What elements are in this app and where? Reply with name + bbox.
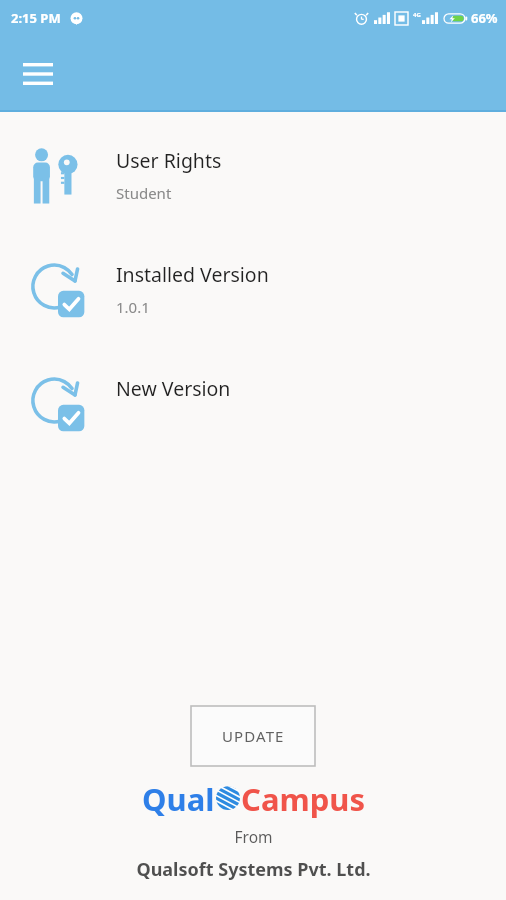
staticText: Qual: [142, 778, 215, 820]
staticText: 1.0.1: [116, 297, 150, 317]
button[interactable]: Open navigation menu: [14, 50, 62, 98]
staticText: Installed Version: [116, 261, 269, 288]
staticText: 2:15 PM: [11, 9, 61, 27]
staticText: 4G: [413, 11, 421, 19]
staticText: User Rights: [116, 147, 222, 174]
staticText: Student: [116, 183, 172, 203]
button[interactable]: UPDATE: [191, 706, 315, 766]
staticText: UPDATE: [222, 726, 285, 746]
staticText: Campus: [241, 778, 365, 820]
staticText: From: [234, 826, 273, 847]
button[interactable]: User Rights: [0, 118, 506, 232]
staticText: 66%: [471, 9, 498, 27]
button[interactable]: New Version: [0, 346, 506, 460]
staticText: Qualsoft Systems Pvt. Ltd.: [136, 857, 371, 882]
button[interactable]: Installed Version: [0, 232, 506, 346]
staticText: New Version: [116, 375, 231, 402]
